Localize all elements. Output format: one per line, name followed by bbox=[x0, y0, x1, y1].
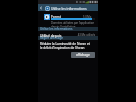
staticText: Données utilisées par l'application depu… bbox=[51, 21, 95, 28]
button[interactable]: Utilisé depuis bbox=[38, 32, 98, 37]
staticText: Forest bbox=[51, 14, 61, 19]
staticText: Utilisé depuis bbox=[40, 33, 62, 38]
staticText: 43 Mo utilisés bbox=[76, 33, 95, 37]
staticText: Réduire la Luminosité de l'écran et le d… bbox=[40, 42, 90, 50]
button[interactable]: Back bbox=[38, 4, 44, 11]
staticText: affichage bbox=[76, 53, 90, 57]
button[interactable]: affichage bbox=[71, 52, 95, 58]
staticText: Utilise les informations bbox=[51, 6, 87, 10]
staticText: Régler affichage bbox=[40, 36, 63, 40]
staticText: 5,0 Mo bbox=[83, 15, 92, 19]
staticText: Utilise les informations bbox=[40, 27, 73, 31]
